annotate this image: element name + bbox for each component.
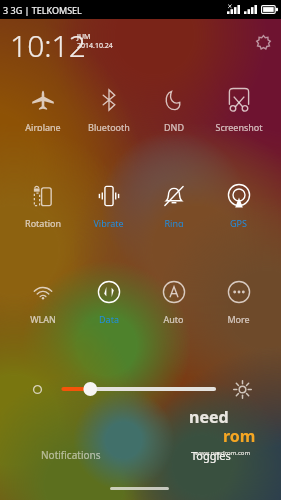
button[interactable]: Bluetooth bbox=[76, 75, 141, 131]
button[interactable]: GPS bbox=[206, 171, 271, 227]
staticText: Toggles bbox=[191, 448, 231, 463]
staticText: 10:12 bbox=[10, 25, 86, 66]
staticText: 2014.10.24 bbox=[77, 41, 113, 51]
staticText: 3 3G | TELKOMSEL bbox=[3, 4, 82, 16]
button[interactable]: Brightness slider bbox=[55, 380, 222, 398]
staticText: Ring bbox=[164, 217, 184, 227]
staticText: Vibrate bbox=[93, 217, 124, 227]
staticText: Auto bbox=[163, 313, 184, 323]
button[interactable]: Rotation bbox=[10, 171, 76, 227]
staticText: WLAN bbox=[30, 313, 56, 323]
staticText: www.needrom.com bbox=[195, 449, 251, 457]
staticText: More bbox=[227, 313, 250, 323]
staticText: Airplane bbox=[25, 121, 61, 131]
staticText: need bbox=[189, 406, 229, 428]
button[interactable]: Toggles bbox=[160, 444, 262, 466]
staticText: GPS bbox=[230, 217, 247, 227]
staticText: Screenshot bbox=[215, 121, 263, 131]
button[interactable]: Data bbox=[76, 267, 141, 323]
staticText: DND bbox=[164, 121, 184, 131]
staticText: JUM bbox=[77, 32, 91, 42]
button[interactable]: Maximum brightness bbox=[233, 380, 252, 399]
button[interactable]: Airplane bbox=[10, 75, 76, 131]
button[interactable]: Auto bbox=[141, 267, 206, 323]
staticText: Data bbox=[99, 313, 119, 323]
button[interactable]: Vibrate bbox=[76, 171, 141, 227]
button[interactable]: Screenshot bbox=[206, 75, 271, 131]
button[interactable]: DND bbox=[141, 75, 206, 131]
staticText: Notifications bbox=[41, 448, 101, 462]
button[interactable]: More bbox=[206, 267, 271, 323]
staticText: Bluetooth bbox=[88, 121, 130, 131]
button[interactable]: WLAN bbox=[10, 267, 76, 323]
button[interactable]: Notifications bbox=[20, 444, 122, 466]
button[interactable]: Settings bbox=[252, 31, 275, 54]
button[interactable]: Minimum brightness bbox=[29, 381, 46, 398]
staticText: Rotation bbox=[25, 217, 61, 227]
staticText: rom bbox=[223, 425, 256, 447]
button[interactable]: Ring bbox=[141, 171, 206, 227]
